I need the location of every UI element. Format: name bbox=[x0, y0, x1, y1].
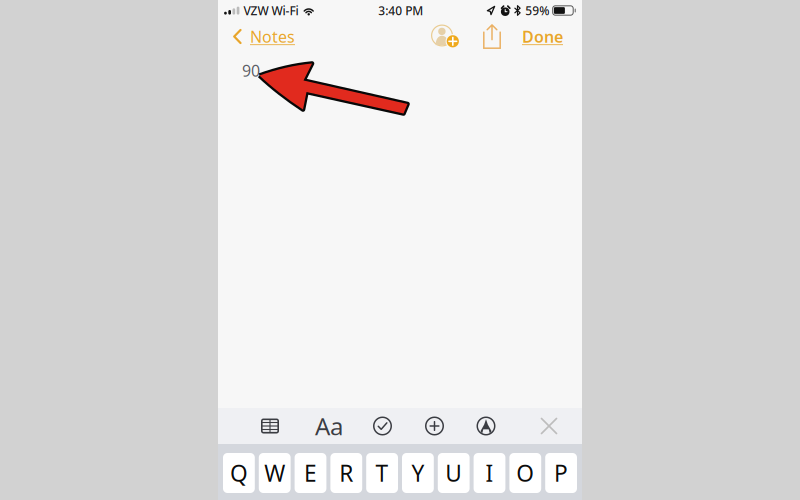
button[interactable]: W bbox=[259, 453, 291, 493]
staticText: U bbox=[445, 458, 462, 488]
button[interactable]: Y bbox=[402, 453, 434, 493]
button[interactable]: Q bbox=[223, 453, 255, 493]
button[interactable]: Aa bbox=[302, 408, 356, 444]
staticText: Done bbox=[522, 26, 563, 47]
staticText: 3:40 PM bbox=[378, 2, 423, 18]
button[interactable]: T bbox=[366, 453, 398, 493]
staticText: E bbox=[304, 458, 317, 488]
staticText: O bbox=[516, 458, 534, 488]
staticText: Y bbox=[411, 458, 424, 488]
staticText: 90 bbox=[242, 60, 260, 81]
button[interactable]: I bbox=[474, 453, 505, 493]
button[interactable]: Checklist bbox=[356, 408, 409, 444]
button[interactable]: Add People bbox=[425, 24, 460, 48]
button[interactable]: Share bbox=[460, 24, 507, 49]
staticText: R bbox=[339, 458, 353, 488]
button[interactable]: R bbox=[330, 453, 362, 493]
staticText: I bbox=[485, 458, 493, 488]
staticText: VZW Wi-Fi bbox=[243, 2, 298, 18]
button[interactable]: P bbox=[545, 453, 577, 493]
button[interactable]: Close bbox=[529, 408, 569, 444]
button[interactable]: Notes bbox=[228, 22, 300, 51]
staticText: P bbox=[554, 458, 568, 488]
staticText: Notes bbox=[250, 26, 295, 47]
button[interactable]: Add attachment bbox=[409, 408, 460, 444]
button[interactable]: Markup bbox=[460, 408, 512, 444]
button[interactable]: Done bbox=[507, 26, 563, 47]
button[interactable]: E bbox=[295, 453, 326, 493]
staticText: 59% bbox=[525, 2, 549, 18]
button[interactable]: Table bbox=[238, 408, 302, 444]
button[interactable]: O bbox=[509, 453, 541, 493]
staticText: Q bbox=[230, 458, 248, 488]
staticText: T bbox=[376, 458, 389, 488]
staticText: Aa bbox=[315, 410, 343, 442]
button[interactable]: U bbox=[438, 453, 470, 493]
staticText: W bbox=[264, 458, 285, 488]
